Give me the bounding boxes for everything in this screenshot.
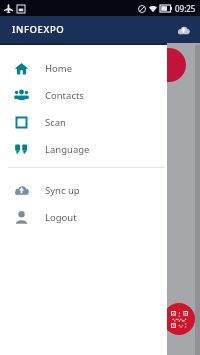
staticText: Scan (45, 116, 66, 129)
staticText: Home (45, 62, 73, 75)
button[interactable]: Scan QR code (163, 303, 195, 335)
button[interactable]: Language (0, 136, 167, 163)
button[interactable]: Logout (0, 204, 167, 231)
button[interactable]: Sync up (172, 19, 194, 41)
button[interactable]: Scan (0, 109, 167, 136)
staticText: Contacts (45, 89, 84, 102)
staticText: 09:25 (175, 3, 196, 14)
button[interactable]: Contacts (0, 82, 167, 109)
button[interactable]: Sync up (0, 177, 167, 204)
staticText: INFOEXPO (12, 23, 65, 36)
button[interactable]: Home (0, 55, 167, 82)
staticText: Language (45, 143, 90, 156)
staticText: Logout (45, 211, 77, 224)
staticText: Sync up (45, 184, 80, 197)
